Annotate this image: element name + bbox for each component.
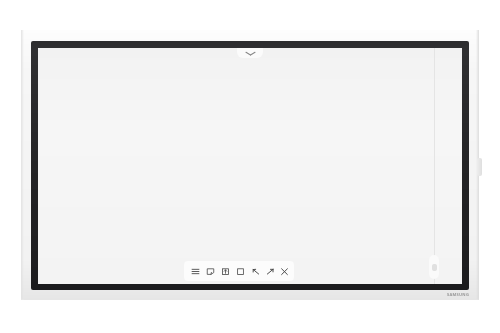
button[interactable]: New page [204,265,216,277]
button[interactable]: Export [219,265,231,277]
button[interactable]: Close [279,265,289,277]
button[interactable]: Redo [264,265,276,277]
button[interactable]: Menu [189,265,201,277]
other: Pen tray [429,255,439,279]
staticText: SAMSUNG [441,292,475,297]
button[interactable]: Eraser [234,265,246,277]
button[interactable]: Undo [249,265,261,277]
button[interactable]: Open menu [237,48,263,58]
